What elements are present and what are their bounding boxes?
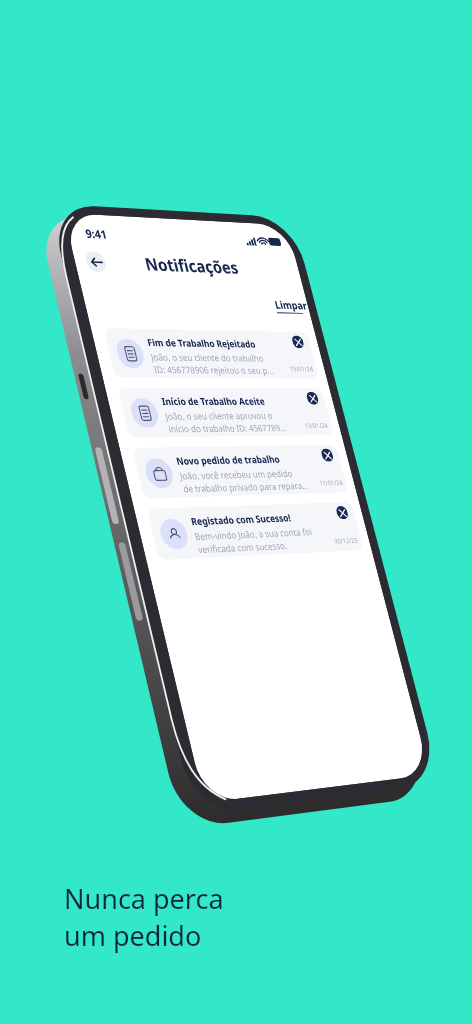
button[interactable]: Novo pedido de trabalho: [48, 251, 294, 302]
button[interactable]: Início de Trabalho Aceite: [48, 190, 294, 241]
staticText: início do trabalho ID: 4567789...: [95, 226, 237, 239]
staticText: Nunca perca: [64, 880, 224, 917]
staticText: Bem-vindo João, a sua conta foi: [95, 335, 236, 348]
staticText: João, você recebeu um pedido: [95, 274, 230, 287]
staticText: verificada com sucesso.: [95, 348, 201, 361]
button[interactable]: Registado com Sucesso!: [48, 312, 294, 363]
staticText: João, o seu cliente aprovou o: [95, 213, 223, 226]
staticText: Início de Trabalho Aceite: [95, 197, 218, 211]
staticText: um pedido: [64, 917, 202, 954]
staticText: 13/01/24: [260, 226, 290, 236]
staticText: Novo pedido de trabalho: [95, 258, 219, 272]
staticText: 30/12/23: [260, 348, 290, 358]
staticText: Registado com Sucesso!: [95, 319, 214, 333]
